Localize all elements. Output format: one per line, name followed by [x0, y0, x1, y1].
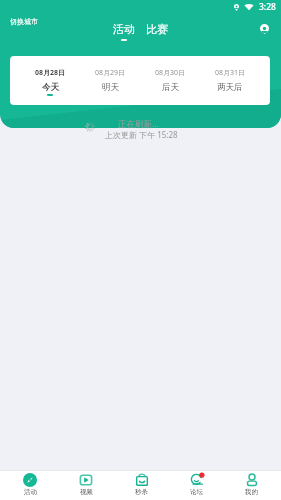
button[interactable]: 08月31日	[200, 56, 260, 105]
staticText: 3:28	[259, 1, 276, 13]
button[interactable]: 论坛	[169, 471, 224, 500]
staticText: 论坛	[190, 488, 203, 496]
button[interactable]: 比赛	[146, 22, 168, 41]
button[interactable]: 08月28日	[20, 56, 80, 105]
staticText: 明天	[102, 82, 119, 93]
staticText: 正在刷新...	[118, 118, 159, 130]
staticText: 两天后	[217, 82, 243, 93]
staticText: 今天	[42, 82, 59, 93]
button[interactable]: 08月30日	[140, 56, 200, 105]
staticText: 我的	[245, 488, 258, 496]
staticText: 视频	[80, 488, 93, 496]
staticText: 后天	[162, 82, 179, 93]
staticText: 08月28日	[35, 68, 66, 78]
button[interactable]: 秒杀	[114, 471, 169, 500]
button[interactable]: 切换城市	[6, 14, 42, 29]
button[interactable]: 08月29日	[80, 56, 140, 105]
staticText: 活动	[24, 488, 37, 496]
button[interactable]: Location	[252, 16, 277, 41]
button[interactable]: 活动	[113, 22, 135, 41]
button[interactable]: 活动	[2, 471, 58, 500]
staticText: 秒杀	[135, 488, 148, 496]
staticText: 08月30日	[155, 68, 186, 78]
staticText: 上次更新 下午 15:28	[105, 129, 178, 140]
button[interactable]: 我的	[224, 471, 279, 500]
staticText: 活动	[113, 22, 135, 36]
staticText: 08月29日	[95, 68, 126, 78]
staticText: 08月31日	[215, 68, 246, 78]
staticText: 切换城市	[10, 17, 38, 26]
staticText: 比赛	[146, 22, 168, 36]
button[interactable]: 视频	[58, 471, 114, 500]
